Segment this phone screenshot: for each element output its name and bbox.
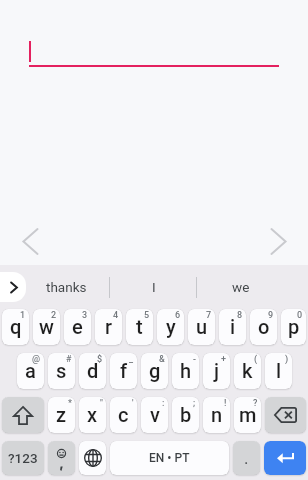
staticText: _ xyxy=(129,354,134,365)
staticText: 2 xyxy=(51,310,57,321)
staticText: we xyxy=(232,279,250,295)
staticText: ( xyxy=(254,354,258,365)
staticText: 8 xyxy=(237,310,243,321)
staticText: s xyxy=(56,359,67,382)
staticText: 0 xyxy=(297,310,303,321)
staticText: I xyxy=(152,279,156,295)
button[interactable]: Space xyxy=(110,441,229,475)
staticText: n xyxy=(211,403,223,426)
button[interactable]: z xyxy=(48,397,75,433)
button[interactable]: d xyxy=(79,353,106,389)
staticText: l xyxy=(276,359,282,382)
button[interactable]: ?123 xyxy=(2,441,44,475)
staticText: . xyxy=(244,448,249,468)
button[interactable]: m xyxy=(234,397,261,433)
button[interactable]: h xyxy=(172,353,199,389)
staticText: * xyxy=(68,398,72,409)
staticText: f xyxy=(120,359,128,382)
staticText: y xyxy=(166,315,176,338)
staticText: & xyxy=(159,354,165,365)
button[interactable]: Backspace xyxy=(265,397,306,433)
staticText: q xyxy=(10,315,22,338)
staticText: 3 xyxy=(82,310,88,321)
button[interactable]: f xyxy=(110,353,137,389)
button[interactable]: q xyxy=(2,309,29,345)
staticText: j xyxy=(214,359,220,382)
button[interactable]: i xyxy=(219,309,246,345)
button[interactable]: j xyxy=(203,353,230,389)
button[interactable]: v xyxy=(141,397,168,433)
staticText: m xyxy=(239,403,257,426)
staticText: z xyxy=(56,403,67,426)
staticText: u xyxy=(196,315,208,338)
button[interactable]: I xyxy=(110,265,197,309)
staticText: ! xyxy=(224,398,227,409)
staticText: thanks xyxy=(46,279,87,295)
staticText: ' xyxy=(132,398,134,409)
staticText: r xyxy=(105,315,113,338)
button[interactable]: thanks xyxy=(22,265,110,309)
button[interactable]: s xyxy=(48,353,75,389)
button[interactable]: e xyxy=(64,309,91,345)
button[interactable]: . xyxy=(233,441,260,475)
button[interactable]: Previous xyxy=(12,223,48,259)
staticText: - xyxy=(193,354,196,365)
staticText: ? xyxy=(253,398,258,409)
button[interactable]: Shift xyxy=(2,397,44,433)
button[interactable]: k xyxy=(234,353,261,389)
staticText: $ xyxy=(97,354,103,365)
staticText: 7 xyxy=(206,310,212,321)
button[interactable] xyxy=(29,41,279,67)
button[interactable]: b xyxy=(172,397,199,433)
button[interactable]: Change language xyxy=(79,441,106,475)
staticText: x xyxy=(87,403,98,426)
staticText: g xyxy=(149,359,161,382)
staticText: p xyxy=(288,315,300,338)
staticText: ) xyxy=(285,354,289,365)
staticText: b xyxy=(180,403,192,426)
button[interactable]: t xyxy=(126,309,153,345)
button[interactable]: n xyxy=(203,397,230,433)
button[interactable]: More suggestions xyxy=(0,272,26,302)
staticText: o xyxy=(258,315,270,338)
staticText: k xyxy=(242,359,253,382)
button[interactable]: p xyxy=(281,309,306,345)
button[interactable]: w xyxy=(33,309,60,345)
button[interactable]: o xyxy=(250,309,277,345)
staticText: h xyxy=(180,359,192,382)
staticText: ; xyxy=(193,398,196,409)
staticText: # xyxy=(66,354,72,365)
staticText: 1 xyxy=(20,310,26,321)
staticText: d xyxy=(87,359,99,382)
staticText: ?123 xyxy=(8,450,38,466)
staticText: EN • PT xyxy=(149,451,190,465)
staticText: " xyxy=(100,398,103,409)
staticText: : xyxy=(162,398,165,409)
staticText: c xyxy=(118,403,129,426)
button[interactable]: g xyxy=(141,353,168,389)
button[interactable]: r xyxy=(95,309,122,345)
button[interactable]: y xyxy=(157,309,184,345)
staticText: w xyxy=(39,315,54,338)
button[interactable]: Emoji xyxy=(48,441,75,475)
staticText: 9 xyxy=(268,310,274,321)
staticText: 5 xyxy=(144,310,150,321)
staticText: t xyxy=(136,315,143,338)
button[interactable]: c xyxy=(110,397,137,433)
staticText: a xyxy=(25,359,36,382)
button[interactable]: x xyxy=(79,397,106,433)
staticText: 6 xyxy=(175,310,181,321)
button[interactable]: l xyxy=(265,353,292,389)
button[interactable]: a xyxy=(17,353,44,389)
staticText: i xyxy=(230,315,236,338)
button[interactable]: u xyxy=(188,309,215,345)
button[interactable]: Next xyxy=(260,223,296,259)
staticText: v xyxy=(150,403,160,426)
staticText: 4 xyxy=(113,310,119,321)
button[interactable]: Enter xyxy=(264,441,306,475)
button[interactable]: we xyxy=(197,265,284,309)
staticText: @ xyxy=(32,354,41,365)
staticText: e xyxy=(72,315,83,338)
staticText: + xyxy=(221,354,227,365)
